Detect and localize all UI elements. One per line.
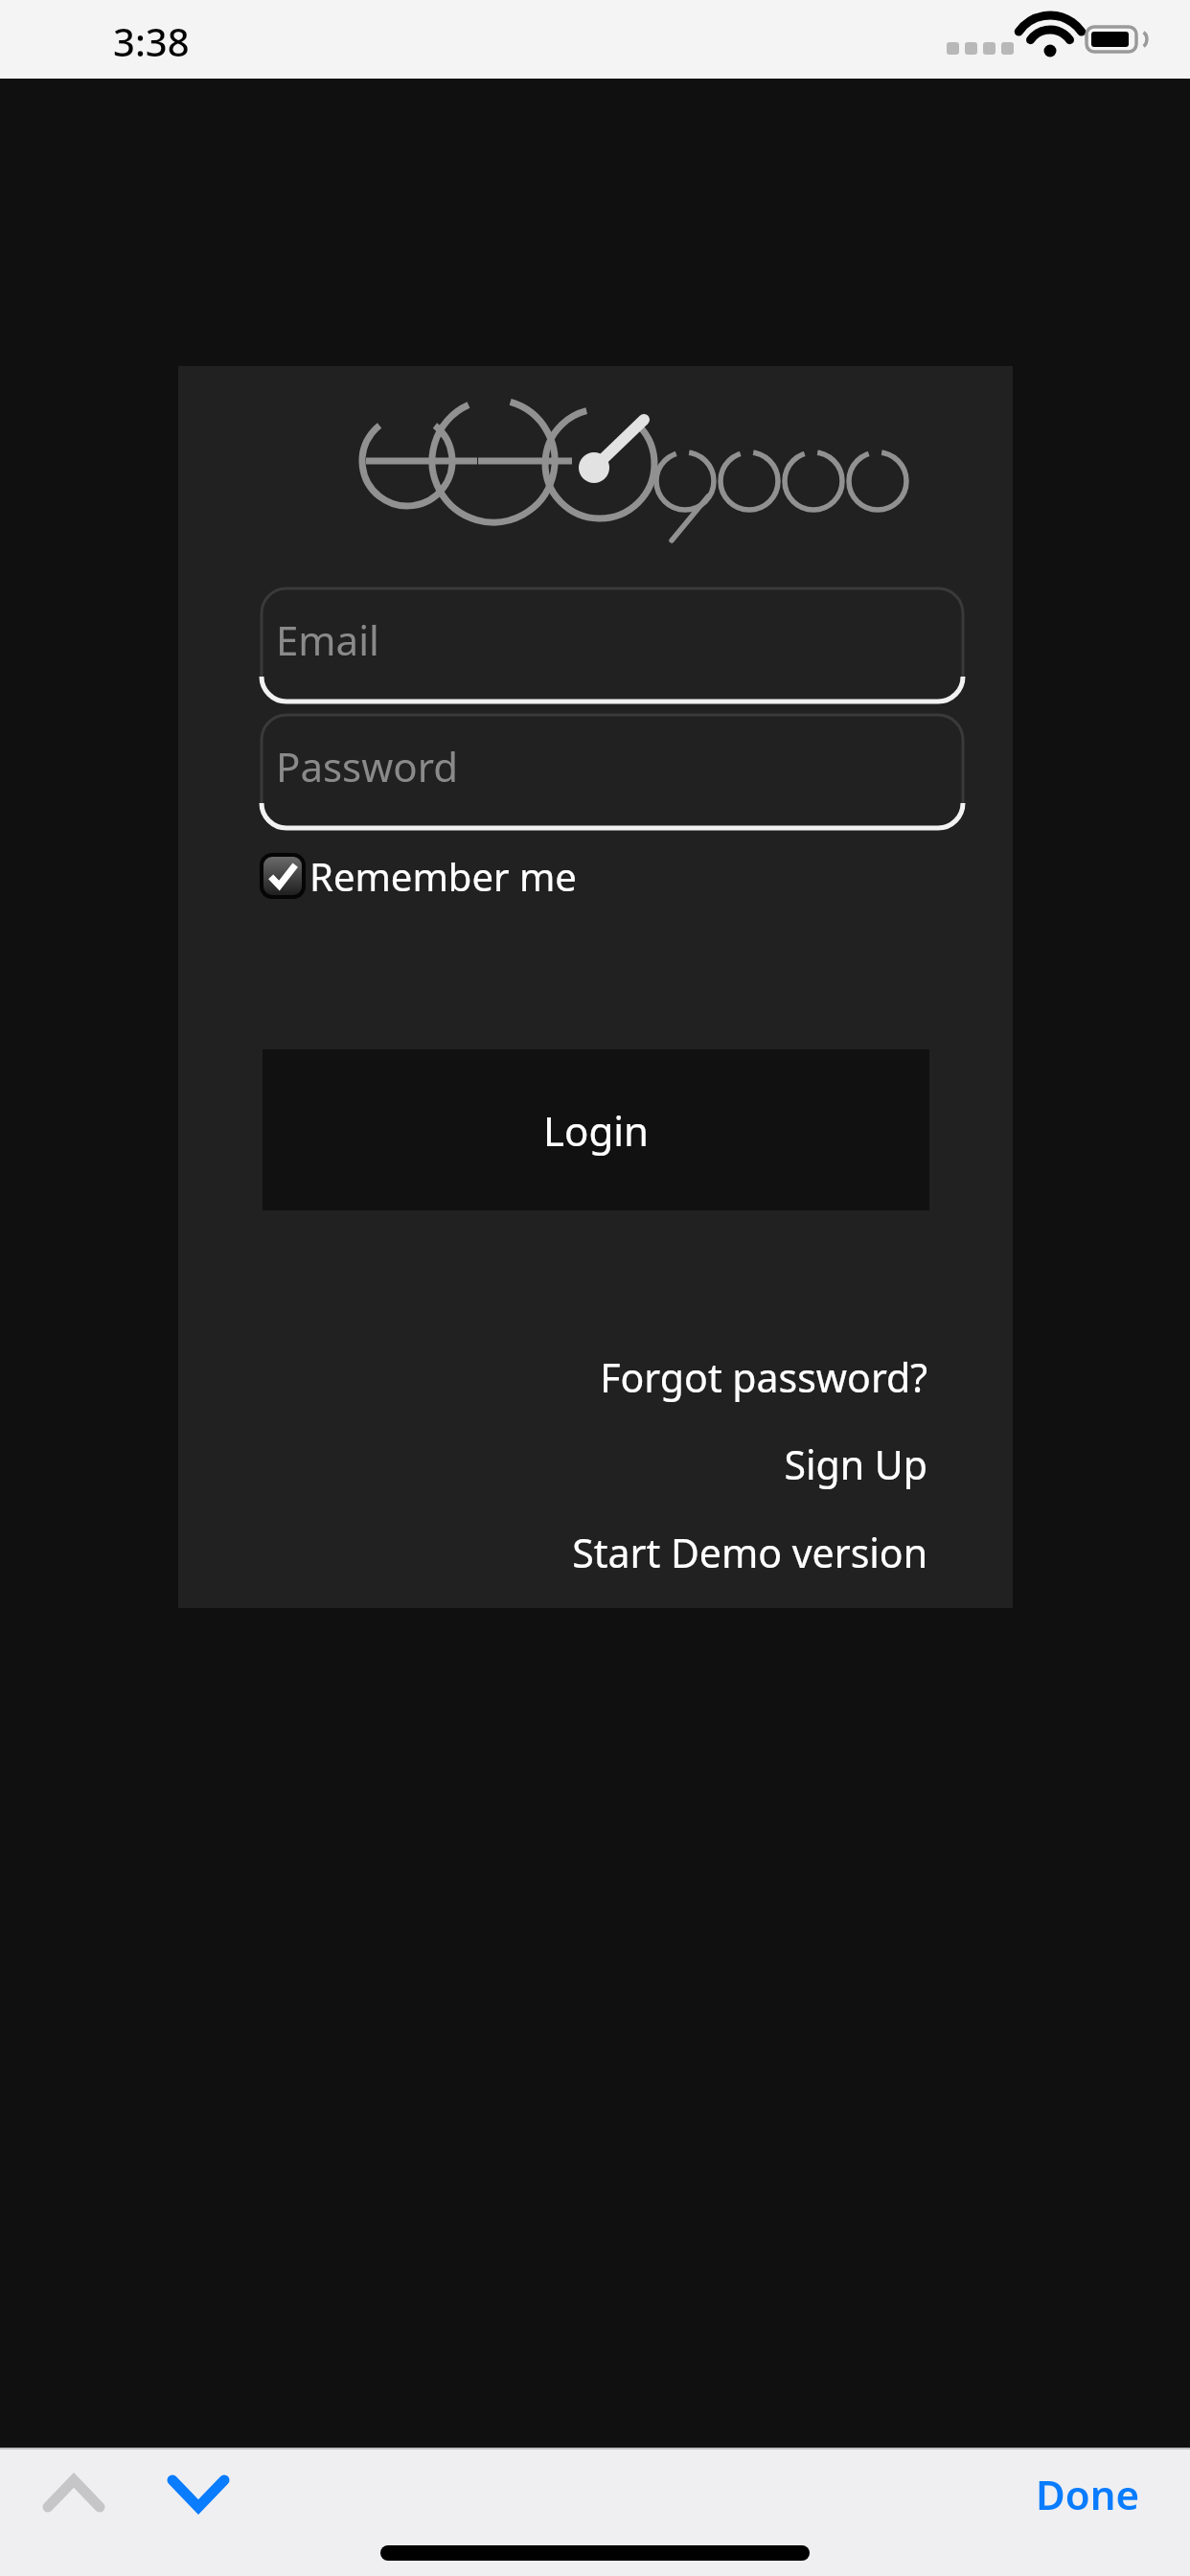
staticText: Password xyxy=(276,739,458,793)
button[interactable]: Forgot password? xyxy=(178,1346,1013,1408)
button[interactable]: Sign Up xyxy=(178,1434,1013,1495)
button[interactable]: Remember me xyxy=(262,845,577,907)
staticText: Login xyxy=(543,1103,650,1158)
staticText: Done xyxy=(1036,2467,1140,2521)
staticText: Email xyxy=(276,612,379,667)
staticText: 3:38 xyxy=(113,15,190,67)
staticText: Start Demo version xyxy=(572,1526,927,1579)
button[interactable]: Previous field xyxy=(21,2453,126,2534)
button[interactable]: Login xyxy=(263,1049,929,1210)
staticText: Remember me xyxy=(309,850,577,902)
button[interactable]: Email xyxy=(262,586,963,703)
button[interactable]: Next field xyxy=(146,2453,251,2534)
button[interactable]: Done xyxy=(1020,2453,1156,2534)
button[interactable]: Start Demo version xyxy=(178,1522,1013,1583)
staticText: Sign Up xyxy=(784,1437,927,1491)
staticText: Forgot password? xyxy=(600,1350,927,1404)
button[interactable]: Password xyxy=(262,713,963,830)
